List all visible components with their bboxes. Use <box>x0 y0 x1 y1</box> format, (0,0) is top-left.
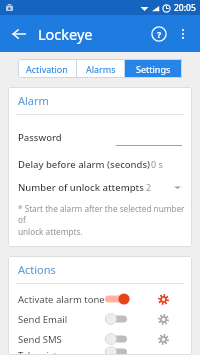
button[interactable]: Number of unlock attempts <box>8 180 192 194</box>
button[interactable]: Activation <box>18 59 76 78</box>
staticText: 2 <box>146 181 152 193</box>
button[interactable]: Send Email settings <box>154 310 172 328</box>
button[interactable]: Password <box>8 127 192 147</box>
staticText: Actions <box>18 262 56 277</box>
staticText: * Start the alarm after the selected num… <box>18 203 192 225</box>
staticText: Take picture <box>18 349 72 355</box>
button[interactable]: Alarms <box>77 59 124 78</box>
button[interactable]: Help <box>147 22 171 46</box>
staticText: ? <box>157 28 162 40</box>
staticText: Alarms <box>86 63 116 75</box>
staticText: Activate alarm tone <box>18 293 105 306</box>
button[interactable]: Activate alarm tone settings <box>154 290 172 308</box>
button[interactable]: Send Email <box>8 309 192 329</box>
button[interactable]: Send SMS <box>8 329 192 349</box>
button[interactable]: Activate alarm tone <box>104 291 132 307</box>
staticText: Send SMS <box>18 333 62 346</box>
button[interactable]: Send SMS <box>104 331 132 347</box>
staticText: 0 s <box>151 158 163 170</box>
staticText: unlock attempts. <box>18 226 83 237</box>
button[interactable]: Settings <box>125 59 182 78</box>
button[interactable]: Take picture <box>8 349 192 355</box>
button[interactable]: Take picture <box>104 349 132 355</box>
staticText: Alarm <box>18 93 49 108</box>
staticText: Number of unlock attempts <box>18 181 144 194</box>
staticText: Send Email <box>18 313 68 326</box>
staticText: Delay before alarm (seconds) <box>18 158 151 171</box>
button[interactable]: Activate alarm tone <box>8 289 192 309</box>
staticText: Lockeye <box>38 24 93 44</box>
button[interactable]: Send SMS settings <box>154 330 172 348</box>
staticText: Settings <box>136 63 171 75</box>
button[interactable]: More options <box>171 22 195 46</box>
staticText: 20:05 <box>174 2 196 14</box>
staticText: Activation <box>26 63 68 75</box>
button[interactable]: Send Email <box>104 311 132 327</box>
button[interactable]: Back <box>7 22 31 46</box>
button[interactable]: Delay before alarm (seconds) <box>8 157 192 171</box>
staticText: Password <box>18 131 62 144</box>
